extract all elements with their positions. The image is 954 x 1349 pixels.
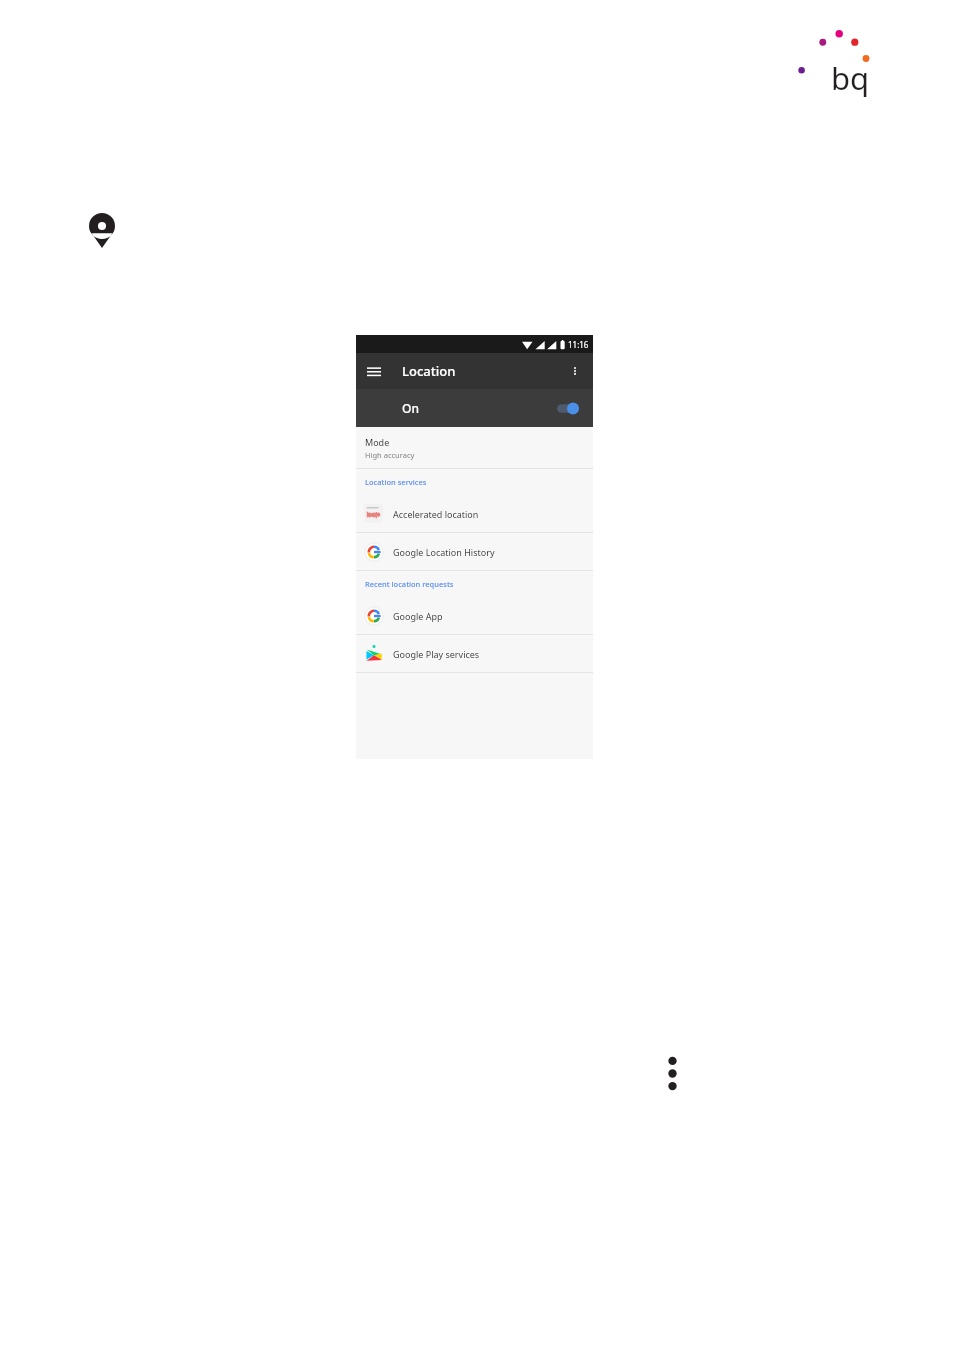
button[interactable]: Accelerated location: [356, 495, 593, 532]
staticText: Google Play services: [393, 648, 480, 660]
staticText: Location: [402, 362, 456, 380]
button[interactable]: Open navigation drawer: [356, 353, 392, 389]
staticText: High accuracy: [365, 450, 415, 460]
button[interactable]: Google App: [356, 597, 593, 634]
staticText: 11:16: [568, 339, 589, 350]
staticText: bq: [831, 57, 870, 99]
button[interactable]: Google Play services: [356, 635, 593, 672]
button[interactable]: More options: [557, 353, 593, 389]
other: More options: [667, 1056, 678, 1091]
button[interactable]: On: [356, 389, 593, 427]
staticText: Mode: [365, 436, 390, 448]
button[interactable]: Mode: [356, 427, 593, 468]
button[interactable]: Google Location History: [356, 533, 593, 570]
staticText: Google App: [393, 610, 443, 622]
staticText: On: [402, 400, 419, 416]
staticText: Google Location History: [393, 546, 495, 558]
staticText: Location services: [365, 477, 427, 487]
staticText: Recent location requests: [365, 579, 454, 589]
staticText: Accelerated location: [393, 508, 479, 520]
